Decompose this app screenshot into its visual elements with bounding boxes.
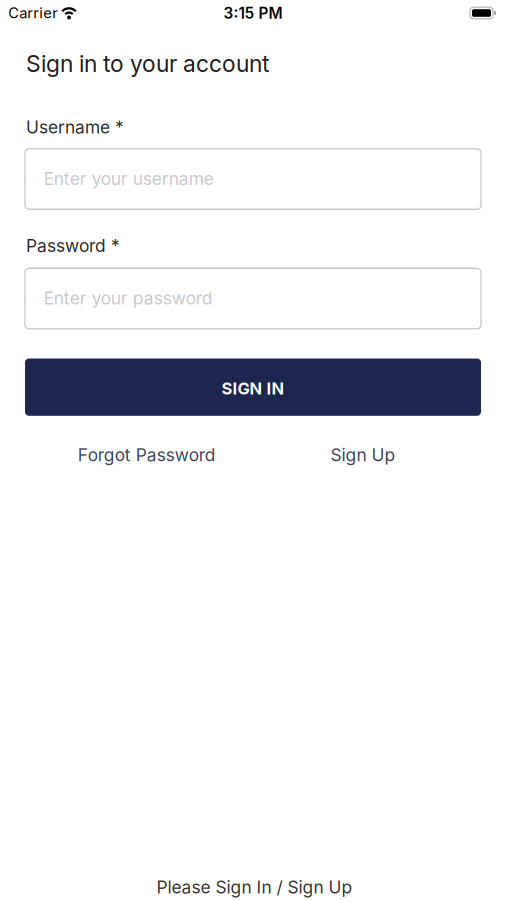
staticText: Forgot Password xyxy=(78,444,216,465)
staticText: Password * xyxy=(26,235,120,256)
button[interactable]: Forgot Password xyxy=(78,444,216,465)
button[interactable]: Enter your password xyxy=(25,268,481,329)
staticText: Please Sign In / Sign Up xyxy=(156,877,352,898)
staticText: Username * xyxy=(26,117,124,138)
staticText: SIGN IN xyxy=(221,378,284,398)
staticText: 3:15 PM xyxy=(223,4,282,23)
staticText: Sign Up xyxy=(330,444,395,465)
staticText: Sign in to your account xyxy=(26,50,269,78)
staticText: Carrier xyxy=(8,4,58,22)
staticText: Enter your password xyxy=(44,288,213,309)
staticText: Enter your username xyxy=(44,168,214,189)
button[interactable]: Enter your username xyxy=(25,149,481,209)
button[interactable]: Sign Up xyxy=(330,444,395,465)
button[interactable]: SIGN IN xyxy=(25,358,481,416)
